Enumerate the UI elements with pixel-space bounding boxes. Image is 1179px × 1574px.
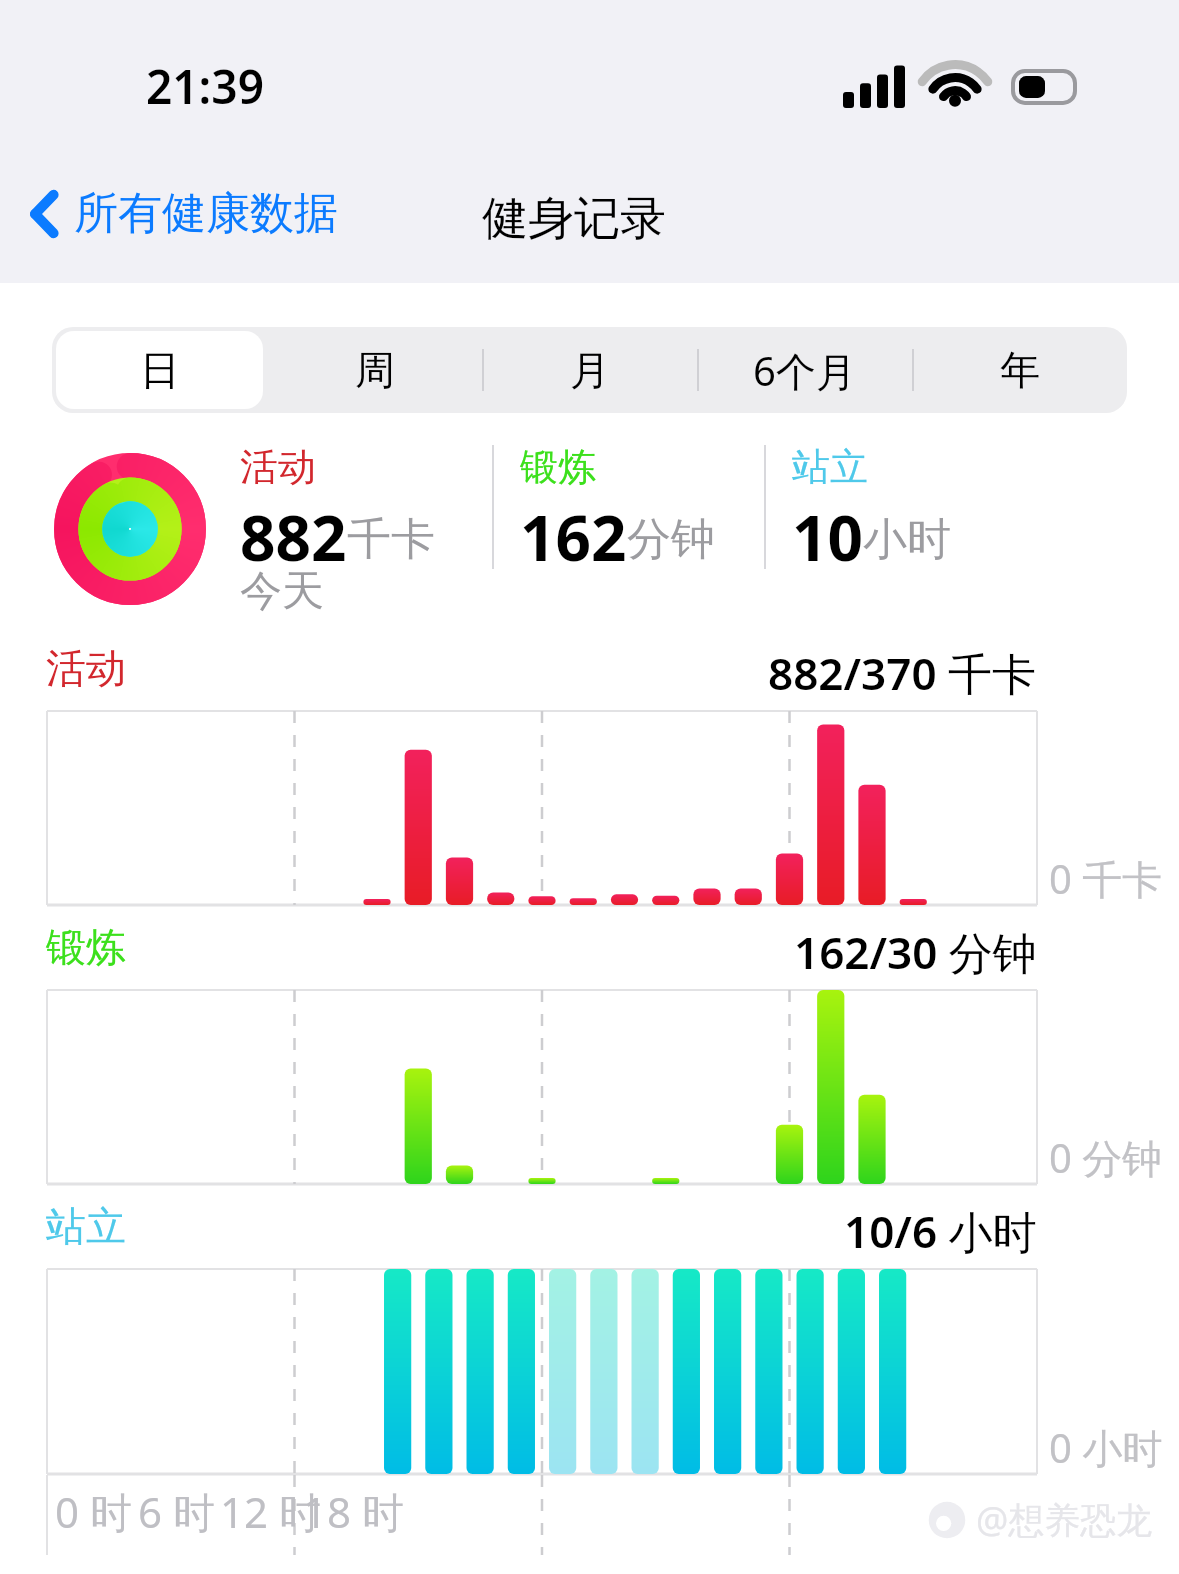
staticText: 18 时 xyxy=(303,1483,404,1540)
staticText: 882 xyxy=(240,495,347,571)
staticText: 162 xyxy=(520,495,627,571)
button[interactable]: 周 xyxy=(271,331,478,409)
button[interactable]: 年 xyxy=(916,331,1123,409)
staticText: 千卡 xyxy=(347,512,435,567)
staticText: 162/30 分钟 xyxy=(794,922,1037,982)
button[interactable]: 6个月 xyxy=(701,331,908,409)
staticText: 10/6 小时 xyxy=(844,1201,1037,1261)
staticText: 6 时 xyxy=(138,1483,215,1540)
button[interactable]: Back xyxy=(18,178,348,249)
staticText: 21:39 xyxy=(146,55,264,118)
staticText: 日 xyxy=(140,345,180,395)
staticText: 健身记录 xyxy=(482,190,666,248)
staticText: 月 xyxy=(570,345,610,395)
staticText: 6个月 xyxy=(753,343,856,398)
staticText: 站立 xyxy=(46,1201,126,1251)
staticText: 小时 xyxy=(863,512,951,567)
staticText: @想养恐龙 xyxy=(976,1495,1153,1544)
staticText: 周 xyxy=(355,345,395,395)
staticText: 0 小时 xyxy=(1049,1420,1163,1475)
staticText: 12 时 xyxy=(220,1483,321,1540)
staticText: 活动 xyxy=(46,643,126,693)
staticText: 锻炼 xyxy=(46,922,126,972)
staticText: 10 xyxy=(792,495,863,571)
staticText: 0 时 xyxy=(55,1483,132,1540)
staticText: 882/370 千卡 xyxy=(768,643,1037,703)
button[interactable]: 日 xyxy=(56,331,263,409)
other: Back xyxy=(28,190,60,238)
staticText: 锻炼 xyxy=(520,443,596,491)
button[interactable]: 月 xyxy=(486,331,693,409)
staticText: 站立 xyxy=(792,443,868,491)
staticText: 今天 xyxy=(240,565,324,615)
staticText: 活动 xyxy=(240,443,316,491)
staticText: 分钟 xyxy=(627,512,715,567)
staticText: 0 分钟 xyxy=(1049,1130,1163,1185)
staticText: 年 xyxy=(1000,345,1040,395)
staticText: 0 千卡 xyxy=(1049,851,1163,906)
staticText: 所有健康数据 xyxy=(74,186,338,241)
